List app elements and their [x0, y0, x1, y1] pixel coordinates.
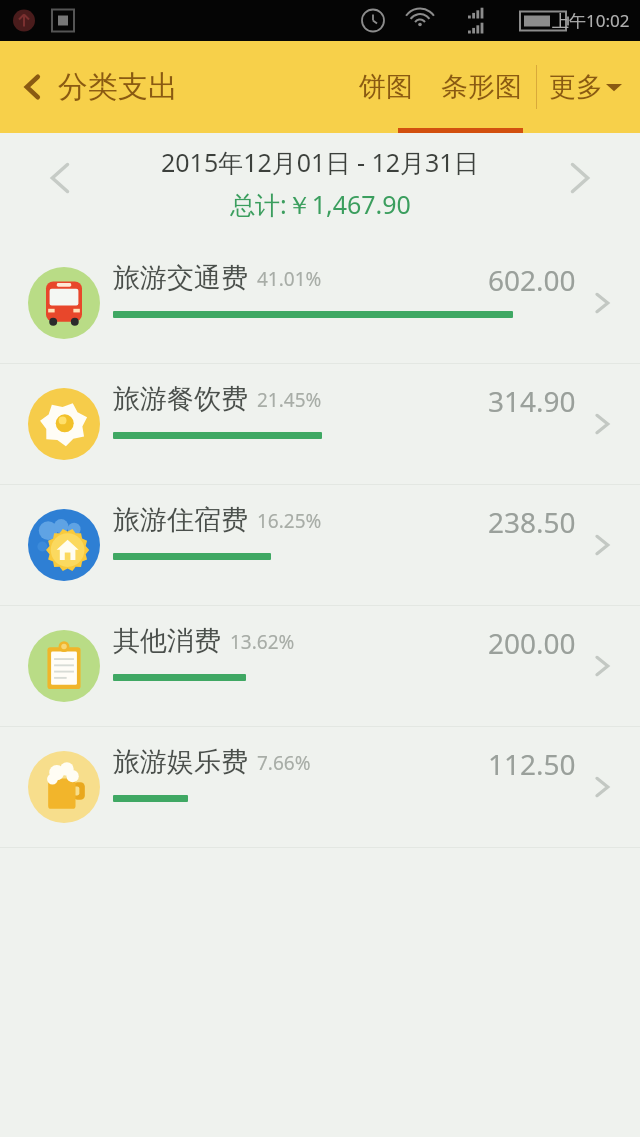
other: Back: [22, 71, 44, 103]
button[interactable]: Next period: [552, 151, 606, 205]
button[interactable]: Previous period: [34, 151, 88, 205]
button[interactable]: 旅游娱乐费: [0, 727, 640, 848]
button[interactable]: Back: [0, 60, 190, 114]
staticText: 2015年12月01日 - 12月31日: [161, 145, 479, 179]
button[interactable]: 旅游交通费: [0, 243, 640, 364]
staticText: 200.00: [488, 624, 576, 662]
staticText: 条形图: [441, 70, 522, 104]
staticText: 饼图: [359, 70, 413, 104]
staticText: 314.90: [488, 382, 576, 420]
staticText: 分类支出: [58, 68, 178, 106]
staticText: 16.25%: [257, 508, 322, 534]
button[interactable]: 条形图: [427, 56, 536, 118]
staticText: 总计:￥1,467.90: [230, 187, 411, 221]
staticText: 41.01%: [257, 266, 322, 292]
button[interactable]: 饼图: [345, 56, 427, 118]
staticText: 上午10:02: [552, 9, 630, 32]
staticText: 238.50: [488, 503, 576, 541]
button[interactable]: 旅游餐饮费: [0, 364, 640, 485]
staticText: 其他消费: [113, 624, 221, 658]
staticText: 旅游住宿费: [113, 503, 248, 537]
staticText: 旅游餐饮费: [113, 382, 248, 416]
staticText: 旅游娱乐费: [113, 745, 248, 779]
staticText: 更多: [549, 70, 603, 104]
staticText: 13.62%: [230, 629, 295, 655]
button[interactable]: 更多: [537, 56, 634, 118]
staticText: 21.45%: [257, 387, 322, 413]
staticText: 7.66%: [257, 750, 311, 776]
staticText: 112.50: [488, 745, 576, 783]
staticText: 旅游交通费: [113, 261, 248, 295]
staticText: 602.00: [488, 261, 576, 299]
button[interactable]: 其他消费: [0, 606, 640, 727]
button[interactable]: 旅游住宿费: [0, 485, 640, 606]
